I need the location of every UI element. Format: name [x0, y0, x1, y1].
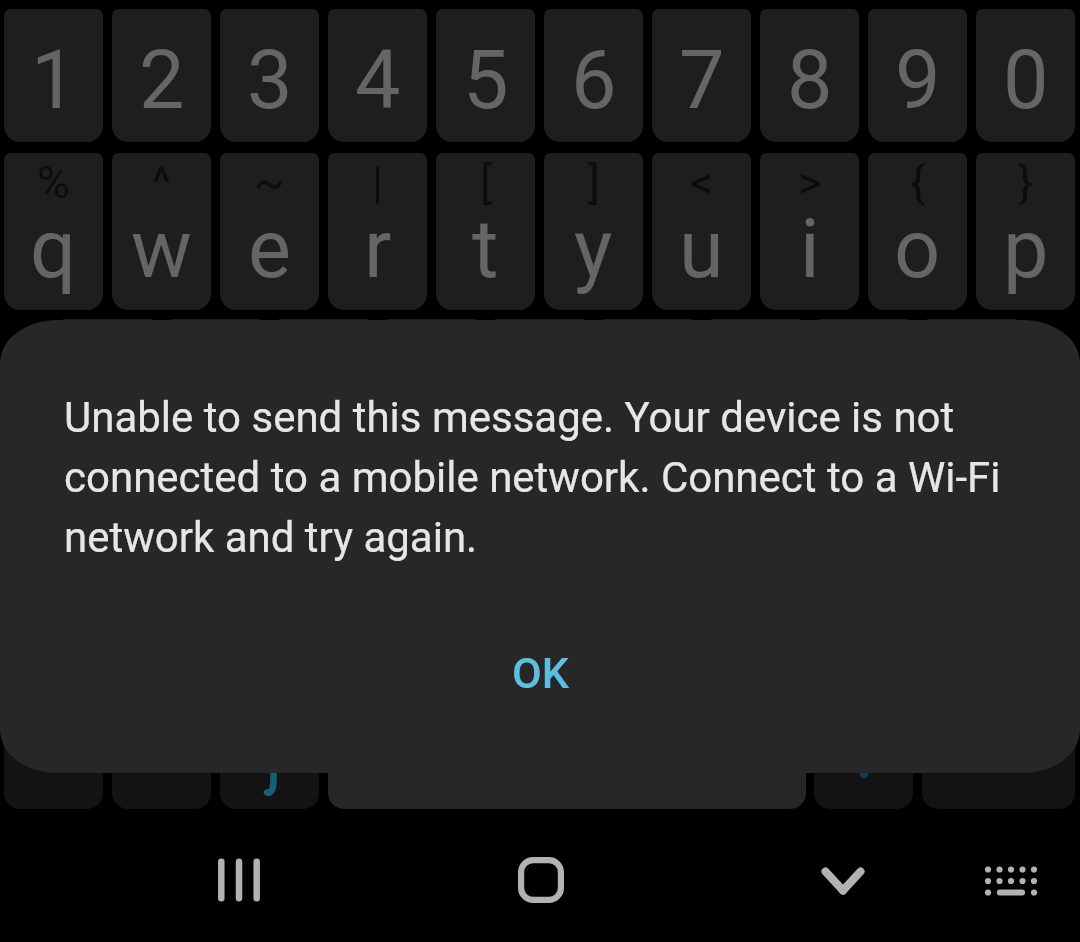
staticText: y — [574, 202, 613, 297]
button[interactable]: ~ — [220, 153, 319, 310]
staticText: { — [910, 156, 926, 209]
button[interactable]: OK — [420, 626, 660, 720]
staticText: i — [800, 202, 820, 297]
button[interactable]: > — [760, 153, 859, 310]
staticText: q — [30, 202, 77, 297]
button[interactable]: 6 — [544, 9, 643, 142]
staticText: [ — [480, 156, 492, 209]
staticText: > — [798, 156, 822, 209]
staticText: e — [248, 202, 291, 297]
button[interactable]: Hide keyboard — [788, 826, 898, 936]
staticText: OK — [512, 648, 569, 698]
button[interactable]: 8 — [760, 9, 859, 142]
staticText: 1 — [31, 33, 77, 128]
staticText: ~ — [254, 156, 285, 209]
staticText: ] — [588, 156, 600, 209]
button[interactable]: 0 — [976, 9, 1075, 142]
button[interactable]: Home — [486, 825, 596, 935]
staticText: } — [1018, 156, 1034, 209]
staticText: ^ — [152, 156, 171, 209]
staticText: w — [131, 202, 192, 297]
button[interactable]: ] — [544, 153, 643, 310]
staticText: 9 — [895, 33, 941, 128]
staticText: t — [472, 202, 499, 297]
button[interactable]: 2 — [112, 9, 211, 142]
staticText: | — [372, 156, 383, 209]
staticText: 0 — [1003, 33, 1049, 128]
staticText: 4 — [355, 33, 401, 128]
button[interactable]: 1 — [4, 9, 103, 142]
staticText: 7 — [679, 33, 725, 128]
button[interactable]: 3 — [220, 9, 319, 142]
button[interactable]: | — [328, 153, 427, 310]
staticText: 2 — [139, 33, 185, 128]
button[interactable]: 5 — [436, 9, 535, 142]
staticText: Unable to send this message. Your device… — [64, 393, 1064, 562]
button[interactable]: < — [652, 153, 751, 310]
staticText: 5 — [463, 33, 509, 128]
button[interactable]: [ — [436, 153, 535, 310]
button[interactable]: 7 — [652, 9, 751, 142]
button[interactable]: 9 — [868, 9, 967, 142]
button[interactable]: { — [868, 153, 967, 310]
staticText: 3 — [247, 33, 293, 128]
button[interactable]: ^ — [112, 153, 211, 310]
button[interactable]: Change keyboard — [956, 826, 1066, 936]
button[interactable]: % — [4, 153, 103, 310]
staticText: 6 — [571, 33, 617, 128]
staticText: % — [37, 156, 70, 209]
staticText: r — [364, 202, 392, 297]
button[interactable]: } — [976, 153, 1075, 310]
staticText: u — [679, 202, 724, 297]
staticText: 8 — [787, 33, 833, 128]
staticText: p — [1003, 202, 1049, 297]
staticText: < — [690, 156, 713, 209]
button[interactable]: 4 — [328, 9, 427, 142]
staticText: o — [894, 202, 941, 297]
button[interactable]: Recent apps — [184, 825, 294, 935]
